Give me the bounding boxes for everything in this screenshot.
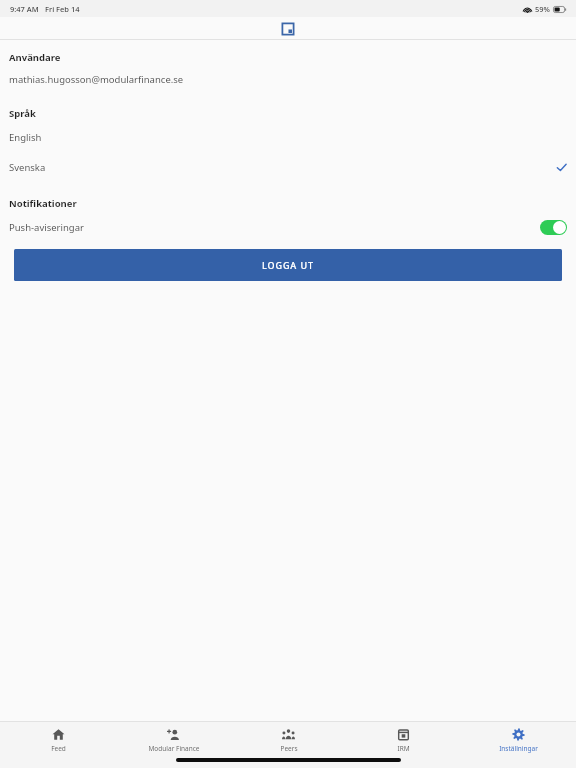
staticText: Notifikationer [9, 197, 77, 210]
staticText: English [9, 131, 42, 144]
staticText: 9:47 AM [10, 4, 39, 14]
button[interactable]: mathias.hugosson@modularfinance.se [0, 66, 576, 92]
staticText: Språk [9, 107, 36, 120]
staticText: mathias.hugosson@modularfinance.se [9, 73, 184, 86]
button[interactable]: Svenska [0, 152, 576, 182]
staticText: Svenska [9, 161, 46, 174]
staticText: Modular Finance [148, 744, 200, 753]
button[interactable]: Feed [0, 722, 116, 758]
staticText: Feed [51, 744, 66, 753]
staticText: Peers [280, 744, 298, 753]
button[interactable]: Modular Finance [116, 722, 231, 758]
button[interactable]: Push notifications, on [540, 220, 567, 235]
button[interactable]: LOGGA UT [14, 249, 562, 281]
staticText: Push-aviseringar [9, 221, 84, 234]
staticText: Användare [9, 51, 61, 64]
staticText: IRM [397, 744, 410, 753]
button[interactable]: Modular Finance logo [280, 21, 296, 37]
staticText: LOGGA UT [262, 259, 314, 271]
button[interactable]: Inställningar [461, 722, 576, 758]
staticText: Inställningar [499, 744, 538, 753]
button[interactable]: IRM [346, 722, 461, 758]
staticText: Fri Feb 14 [45, 4, 80, 14]
button[interactable]: English [0, 122, 576, 152]
button[interactable]: Push-aviseringar [0, 212, 576, 242]
button[interactable]: Peers [231, 722, 346, 758]
staticText: 59% [535, 4, 550, 14]
